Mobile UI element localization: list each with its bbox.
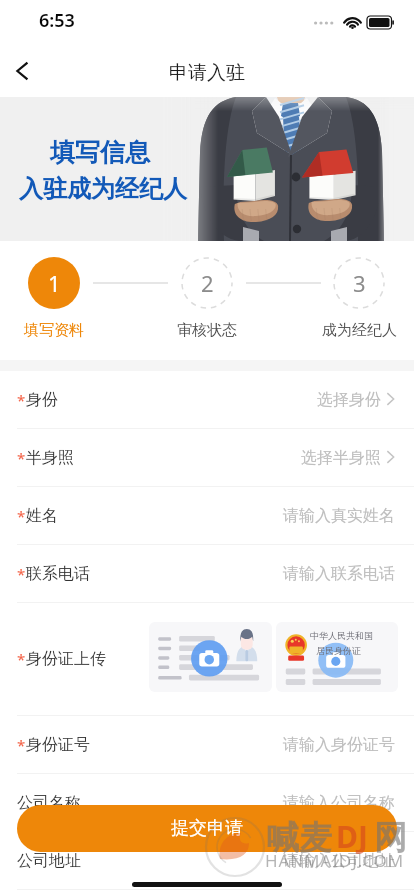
- button[interactable]: *: [0, 371, 414, 429]
- button[interactable]: 提交申请: [17, 805, 397, 852]
- staticText: 请输入身份证号: [283, 735, 395, 755]
- button[interactable]: 公司地址: [0, 832, 414, 890]
- staticText: 网: [374, 817, 407, 859]
- staticText: DJ: [336, 816, 368, 857]
- staticText: *: [17, 448, 26, 468]
- button[interactable]: *: [0, 545, 414, 603]
- staticText: 身份证上传: [26, 649, 106, 669]
- staticText: 请输入公司地址: [283, 851, 395, 871]
- staticText: 居民身份证: [316, 645, 361, 656]
- staticText: 公司地址: [17, 851, 81, 871]
- button[interactable]: *: [0, 716, 414, 774]
- staticText: 中华人民共和国: [310, 630, 373, 641]
- button[interactable]: *: [0, 429, 414, 487]
- staticText: *: [17, 390, 26, 410]
- staticText: 3: [353, 268, 366, 298]
- staticText: 1: [48, 268, 61, 298]
- button[interactable]: 上传身份证人像面: [149, 622, 272, 692]
- button[interactable]: *: [0, 487, 414, 545]
- staticText: 提交申请: [171, 817, 243, 840]
- staticText: 联系电话: [26, 564, 90, 584]
- staticText: 申请入驻: [169, 61, 245, 85]
- staticText: 填写信息: [50, 137, 150, 168]
- staticText: 填写资料: [24, 321, 84, 340]
- staticText: *: [17, 735, 26, 755]
- staticText: 身份: [26, 390, 58, 410]
- staticText: 选择身份: [317, 390, 381, 410]
- staticText: HANMAIDJ.COM: [265, 849, 405, 872]
- staticText: *: [17, 506, 26, 526]
- staticText: 请输入真实姓名: [283, 506, 395, 526]
- staticText: 身份证号: [26, 735, 90, 755]
- staticText: 请输入公司名称: [283, 793, 395, 813]
- staticText: *: [17, 649, 26, 669]
- staticText: 半身照: [26, 448, 74, 468]
- staticText: 6:53: [39, 8, 75, 33]
- button[interactable]: Back: [0, 48, 46, 94]
- button[interactable]: 公司名称: [0, 774, 414, 832]
- staticText: 请输入联系电话: [283, 564, 395, 584]
- staticText: 公司名称: [17, 793, 81, 813]
- staticText: *: [17, 564, 26, 584]
- staticText: 喊麦: [266, 817, 332, 859]
- staticText: 成为经纪人: [322, 321, 397, 340]
- staticText: 2: [201, 268, 214, 298]
- staticText: 审核状态: [177, 321, 237, 340]
- staticText: 姓名: [26, 506, 58, 526]
- button[interactable]: 上传身份证国徽面: [276, 622, 398, 692]
- staticText: 选择半身照: [301, 448, 381, 468]
- staticText: 入驻成为经纪人: [19, 174, 187, 204]
